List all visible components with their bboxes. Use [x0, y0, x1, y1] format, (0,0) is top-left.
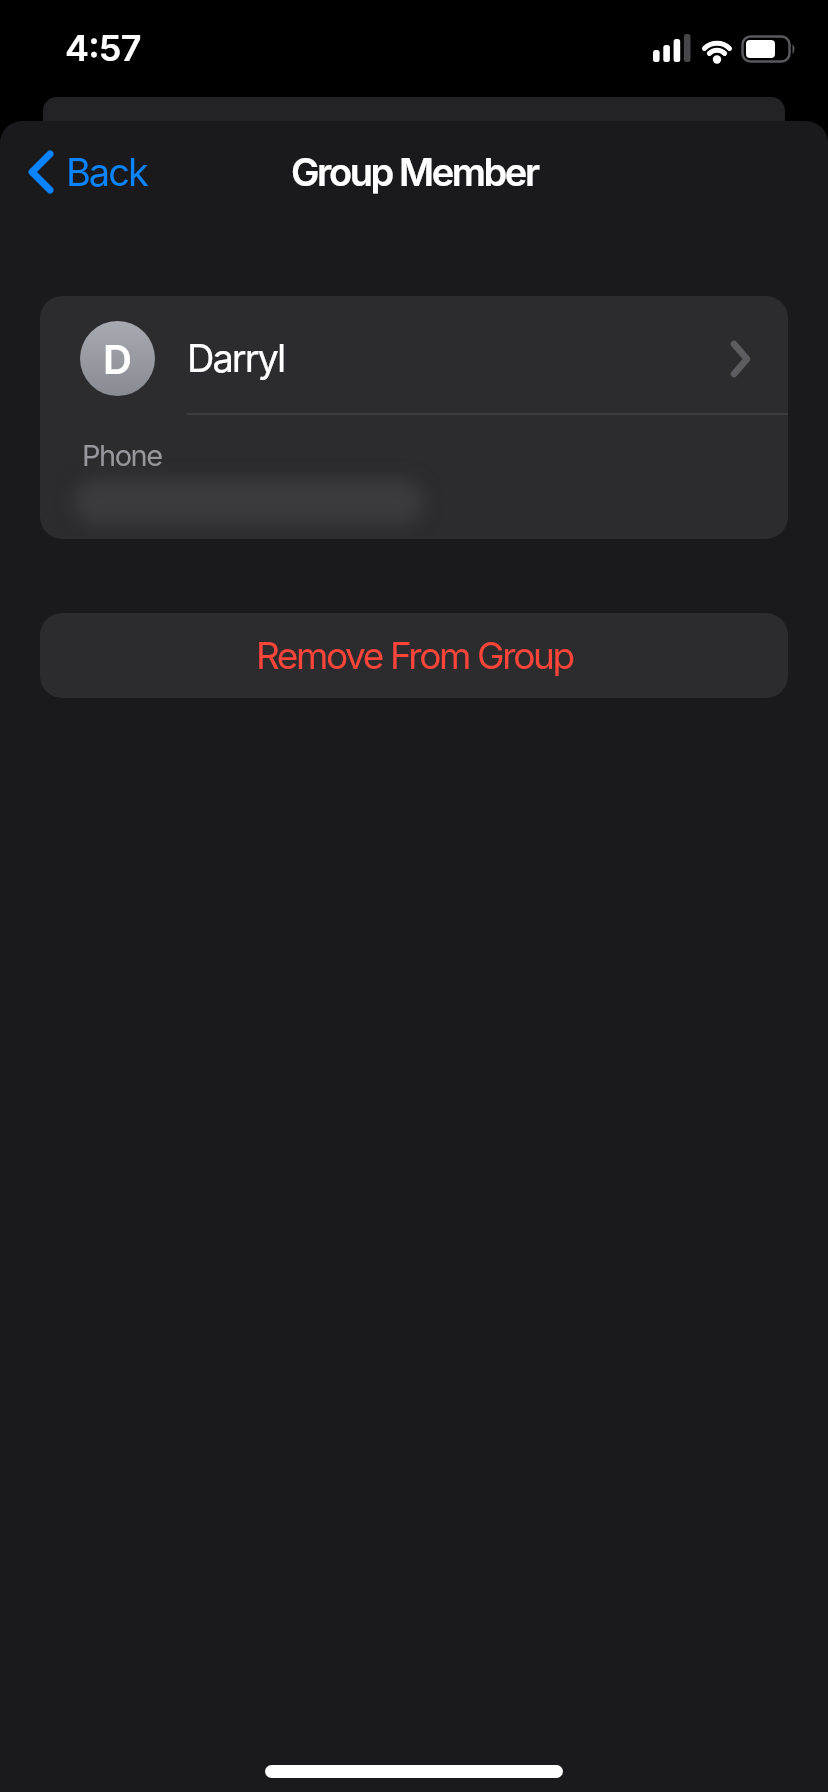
button[interactable]: Remove From Group: [40, 613, 788, 698]
staticText: D: [103, 335, 132, 383]
staticText: Remove From Group: [256, 633, 573, 678]
button[interactable]: Back: [24, 145, 151, 199]
staticText: Group Member: [291, 149, 538, 195]
staticText: 4:57: [65, 26, 141, 70]
staticText: Back: [66, 149, 147, 195]
staticText: Phone: [82, 438, 162, 473]
button[interactable]: D: [40, 296, 788, 420]
staticText: Darryl: [187, 335, 285, 381]
